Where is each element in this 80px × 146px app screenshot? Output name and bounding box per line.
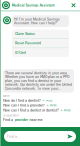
button[interactable]: Send <box>67 134 73 139</box>
staticText: Hi! I'm your Medical Savings Assistant. … <box>14 17 60 25</box>
button[interactable]: ID Card <box>12 48 69 57</box>
staticText: Find a... <box>7 135 20 138</box>
button[interactable]: Close <box>70 2 77 9</box>
button[interactable]: How can I find a dentist or dentist? <box>3 108 77 112</box>
staticText: → FAQs <box>42 99 52 102</box>
staticText: Medical Savings Assistant <box>11 3 54 7</box>
staticText: ID Card <box>15 51 26 55</box>
staticText: → FAQs <box>60 109 70 112</box>
staticText: provider <box>15 118 28 122</box>
staticText: There are several dentists in your area.… <box>5 71 72 90</box>
button[interactable]: Find a <box>3 118 77 122</box>
staticText: → FAQs <box>46 104 56 107</box>
button[interactable]: Claim Status <box>12 29 69 38</box>
staticText: How do I find a dentist? <box>3 98 41 102</box>
staticText: How can I find a provider? <box>3 103 45 107</box>
button[interactable]: Reset Password <box>12 39 69 47</box>
button[interactable]: How do I find a dentist? <box>3 98 77 102</box>
staticText: Reset Password <box>15 41 41 45</box>
staticText: near me <box>29 118 43 122</box>
staticText: More <box>3 94 10 98</box>
staticText: How can I find a dentist or dentist? <box>3 108 59 112</box>
staticText: Suggested <box>3 114 19 117</box>
staticText: Find a <box>3 118 14 122</box>
staticText: Claim Status <box>15 32 35 36</box>
button[interactable]: How can I find a provider? <box>3 103 77 107</box>
